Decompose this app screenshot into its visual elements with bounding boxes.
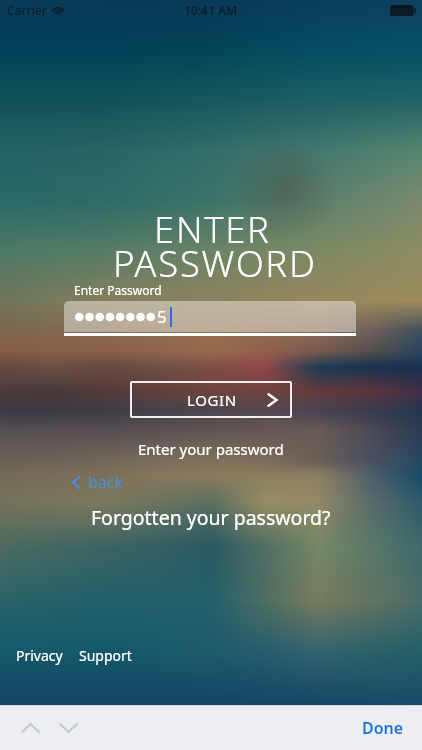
staticText: PASSWORD bbox=[113, 238, 317, 288]
staticText: back bbox=[88, 471, 124, 493]
staticText: ENTER bbox=[154, 204, 271, 254]
button[interactable]: Done bbox=[350, 709, 416, 747]
button[interactable]: Previous field bbox=[13, 711, 47, 745]
button[interactable]: 5 bbox=[64, 301, 356, 332]
button[interactable]: back bbox=[72, 471, 124, 493]
button[interactable]: Privacy bbox=[16, 646, 63, 665]
button[interactable]: Support bbox=[79, 646, 132, 665]
staticText: Carrier bbox=[7, 2, 47, 18]
staticText: Privacy bbox=[16, 646, 63, 665]
staticText: 5 bbox=[157, 305, 167, 328]
staticText: 10:41 AM bbox=[184, 2, 238, 18]
button[interactable]: Next field bbox=[51, 711, 85, 745]
staticText: Enter Password bbox=[74, 282, 162, 298]
button[interactable]: LOGIN bbox=[130, 381, 292, 418]
staticText: LOGIN bbox=[187, 390, 237, 410]
staticText: Support bbox=[79, 646, 132, 665]
staticText: Enter your password bbox=[138, 439, 284, 459]
staticText: Forgotten your password? bbox=[91, 504, 331, 531]
staticText: Done bbox=[362, 717, 404, 739]
